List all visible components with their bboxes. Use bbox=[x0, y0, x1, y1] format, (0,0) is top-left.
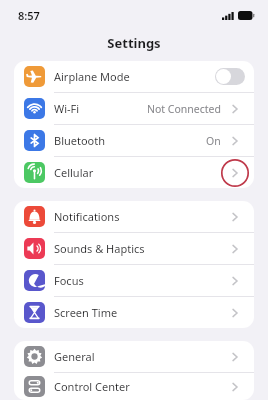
button[interactable]: Bluetooth bbox=[14, 125, 254, 156]
staticText: On bbox=[206, 134, 221, 148]
staticText: Screen Time bbox=[54, 305, 118, 320]
staticText: Focus bbox=[54, 273, 84, 288]
staticText: Notifications bbox=[54, 209, 120, 224]
staticText: 8:57 bbox=[18, 8, 40, 23]
button[interactable]: Control Center bbox=[14, 373, 254, 400]
staticText: Airplane Mode bbox=[54, 69, 130, 84]
button[interactable]: Sounds & Haptics bbox=[14, 233, 254, 264]
button[interactable]: Focus bbox=[14, 265, 254, 296]
staticText: Settings bbox=[107, 34, 161, 52]
button[interactable]: Wi-Fi bbox=[14, 93, 254, 124]
staticText: Wi-Fi bbox=[54, 101, 80, 116]
staticText: Control Center bbox=[54, 379, 130, 394]
button[interactable]: Airplane Mode bbox=[14, 61, 254, 92]
staticText: General bbox=[54, 349, 95, 364]
button[interactable]: Screen Time bbox=[14, 297, 254, 328]
staticText: Bluetooth bbox=[54, 133, 106, 148]
staticText: Not Connected bbox=[147, 102, 221, 116]
button[interactable]: Cellular bbox=[14, 157, 254, 188]
button[interactable]: Airplane Mode toggle, off bbox=[215, 68, 245, 85]
button[interactable]: Notifications bbox=[14, 201, 254, 232]
staticText: Cellular bbox=[54, 165, 94, 180]
button[interactable]: General bbox=[14, 341, 254, 372]
staticText: Sounds & Haptics bbox=[54, 241, 145, 256]
